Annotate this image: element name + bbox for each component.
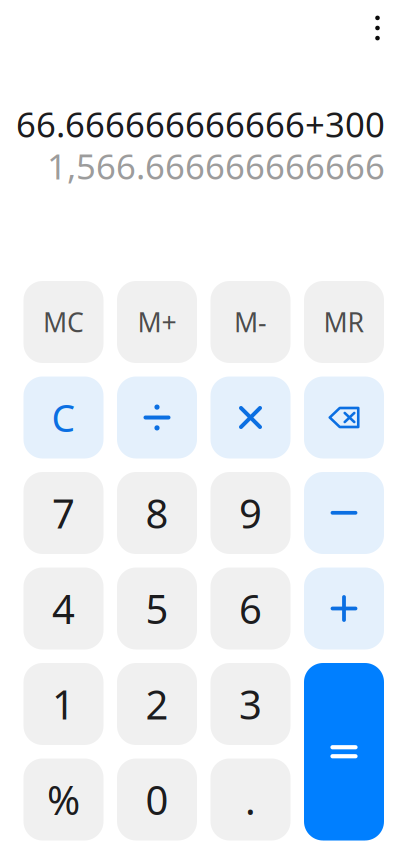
button[interactable]: 8 bbox=[117, 472, 197, 554]
staticText: C bbox=[51, 393, 75, 442]
button[interactable]: M+ bbox=[117, 281, 197, 363]
button[interactable]: 2 bbox=[117, 663, 197, 745]
button[interactable]: 3 bbox=[210, 663, 290, 745]
staticText: 3 bbox=[239, 677, 262, 730]
staticText: 2 bbox=[145, 677, 168, 730]
staticText: 6 bbox=[239, 582, 262, 635]
button[interactable]: Plus bbox=[304, 567, 384, 649]
staticText: 1,566.666666666666 bbox=[47, 143, 385, 189]
button[interactable]: Multiply bbox=[210, 376, 290, 458]
staticText: MR bbox=[323, 304, 364, 340]
button[interactable]: C bbox=[23, 376, 103, 458]
button[interactable]: Minus bbox=[304, 472, 384, 554]
staticText: . bbox=[245, 773, 256, 826]
staticText: % bbox=[47, 773, 80, 826]
button[interactable]: Backspace bbox=[304, 376, 384, 458]
staticText: M- bbox=[234, 304, 267, 340]
button[interactable]: Equals bbox=[304, 663, 384, 840]
staticText: 7 bbox=[52, 486, 75, 539]
button[interactable]: MR bbox=[304, 281, 384, 363]
button[interactable]: 0 bbox=[117, 758, 197, 840]
button[interactable]: 7 bbox=[23, 472, 103, 554]
staticText: 1 bbox=[52, 677, 75, 730]
staticText: 66.666666666666+300 bbox=[16, 101, 385, 147]
button[interactable]: 9 bbox=[210, 472, 290, 554]
button[interactable]: 5 bbox=[117, 567, 197, 649]
button[interactable]: Divide bbox=[117, 376, 197, 458]
button[interactable]: MC bbox=[23, 281, 103, 363]
staticText: MC bbox=[43, 304, 84, 340]
button[interactable]: 6 bbox=[210, 567, 290, 649]
staticText: 9 bbox=[239, 486, 262, 539]
button[interactable]: More options bbox=[352, 0, 403, 56]
staticText: 4 bbox=[52, 582, 75, 635]
button[interactable]: M- bbox=[210, 281, 290, 363]
staticText: 0 bbox=[145, 773, 168, 826]
button[interactable]: . bbox=[210, 758, 290, 840]
button[interactable]: % bbox=[23, 758, 103, 840]
staticText: 5 bbox=[145, 582, 168, 635]
button[interactable]: 1 bbox=[23, 663, 103, 745]
staticText: M+ bbox=[137, 304, 176, 340]
button[interactable]: 4 bbox=[23, 567, 103, 649]
staticText: 8 bbox=[145, 486, 168, 539]
